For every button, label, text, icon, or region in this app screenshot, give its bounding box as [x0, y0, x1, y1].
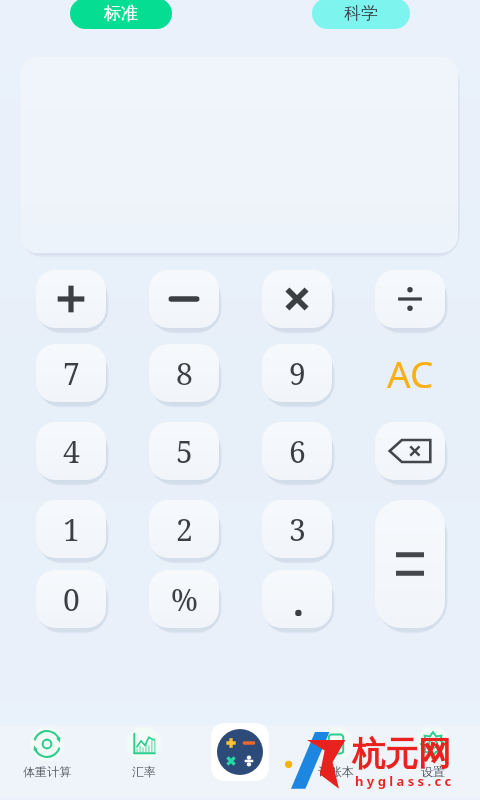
staticText: 7 [63, 353, 80, 394]
button[interactable]: 3 [262, 500, 332, 558]
staticText: 5 [176, 431, 193, 472]
staticText: 标准 [104, 3, 138, 24]
button[interactable]: Multiply [262, 270, 332, 328]
button[interactable]: 2 [149, 500, 219, 558]
staticText: % [171, 579, 198, 620]
staticText: 汇率 [132, 764, 156, 779]
button[interactable]: 9 [262, 344, 332, 402]
button[interactable]: 设置 [397, 727, 469, 793]
staticText: 记账本 [318, 764, 354, 779]
staticText: 8 [176, 353, 193, 394]
button[interactable]: AC [375, 344, 445, 402]
button[interactable]: 体重计算 [11, 727, 83, 793]
button[interactable]: 5 [149, 422, 219, 480]
button[interactable]: 汇率 [108, 727, 180, 793]
staticText: 体重计算 [23, 764, 71, 779]
staticText: 1 [63, 509, 80, 550]
button[interactable]: Calculator [211, 723, 269, 781]
button[interactable]: 7 [36, 344, 106, 402]
staticText: AC [387, 348, 434, 398]
staticText: 科学 [344, 3, 378, 24]
staticText: 6 [289, 431, 306, 472]
staticText: 设置 [421, 764, 445, 779]
button[interactable]: 8 [149, 344, 219, 402]
button[interactable]: 0 [36, 570, 106, 628]
button[interactable]: 记账本 [300, 727, 372, 793]
button[interactable]: Divide [375, 270, 445, 328]
button[interactable]: 标准 [70, 0, 172, 29]
staticText: 9 [289, 353, 306, 394]
button[interactable]: 1 [36, 500, 106, 558]
button[interactable] [262, 570, 332, 628]
button[interactable]: Plus [36, 270, 106, 328]
button[interactable]: Minus [149, 270, 219, 328]
staticText: 2 [176, 509, 193, 550]
button[interactable]: 科学 [312, 0, 410, 29]
button[interactable]: % [149, 570, 219, 628]
button[interactable]: 4 [36, 422, 106, 480]
button[interactable]: 6 [262, 422, 332, 480]
button[interactable]: Equals [375, 500, 445, 628]
staticText: h y g l a s s . c c [355, 772, 452, 790]
staticText: 0 [63, 579, 80, 620]
button[interactable]: Backspace [375, 422, 445, 480]
staticText: 3 [289, 509, 306, 550]
staticText: 4 [63, 431, 80, 472]
staticText: 杭元网 [352, 733, 451, 775]
